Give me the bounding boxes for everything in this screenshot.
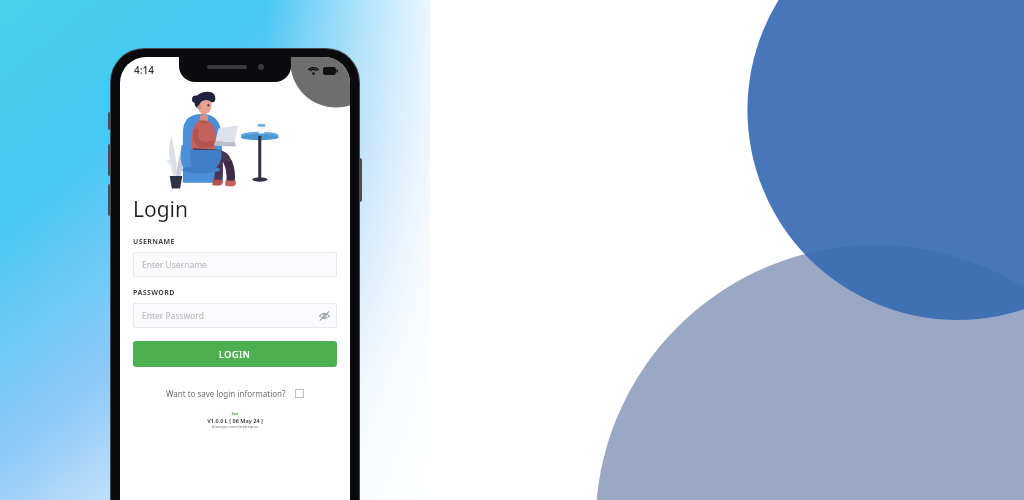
button[interactable]: Show password xyxy=(318,310,330,322)
staticText: Login xyxy=(133,195,189,224)
button[interactable]: LOGIN xyxy=(133,341,337,367)
staticText: Enter Password xyxy=(142,310,205,322)
button[interactable]: Enter Username xyxy=(133,252,337,277)
staticText: Want to save login information? xyxy=(166,388,286,399)
staticText: blueeye.com/mehelpus xyxy=(212,424,258,430)
staticText: V1.0.0 L [ 06 May 24 ] xyxy=(207,417,263,424)
staticText: Enter Username xyxy=(142,259,207,271)
button[interactable]: Want to save login information? xyxy=(162,386,308,401)
staticText: USERNAME xyxy=(133,237,175,247)
button[interactable]: Enter Password xyxy=(133,303,337,328)
staticText: PASSWORD xyxy=(133,288,175,298)
staticText: LOGIN xyxy=(219,348,251,360)
staticText: Env xyxy=(231,411,239,416)
staticText: 4:14 xyxy=(134,63,154,77)
